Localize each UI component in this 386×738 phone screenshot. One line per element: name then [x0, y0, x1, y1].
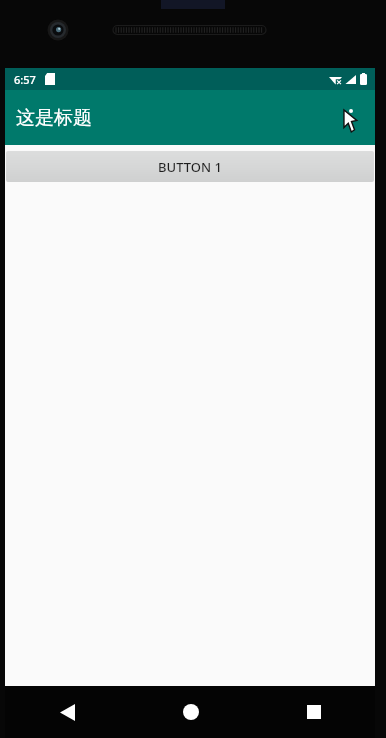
button[interactable]: Home — [129, 686, 252, 738]
staticText: 这是标题 — [16, 106, 92, 130]
button[interactable]: Back — [5, 686, 129, 738]
button[interactable]: BUTTON 1 — [6, 151, 374, 182]
staticText: 6:57 — [14, 72, 36, 87]
button[interactable]: More options — [327, 94, 375, 142]
button[interactable]: Recent apps — [252, 686, 375, 738]
staticText: BUTTON 1 — [158, 158, 222, 176]
